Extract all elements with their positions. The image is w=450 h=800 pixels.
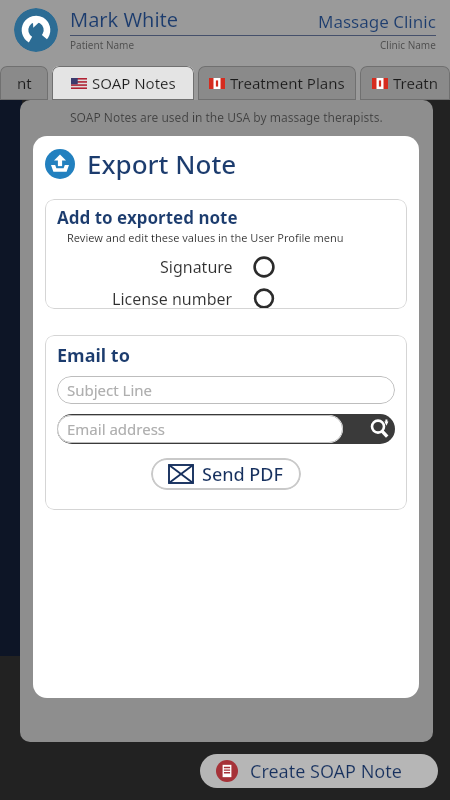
staticText: Signature — [160, 256, 233, 278]
button[interactable]: Search contacts — [365, 414, 395, 444]
button[interactable]: Back — [14, 8, 58, 52]
staticText: Patient Name — [70, 38, 135, 52]
staticText: Create SOAP Note — [250, 759, 402, 784]
staticText: Treatn — [393, 73, 439, 93]
button[interactable]: License number — [57, 288, 395, 309]
staticText: Mark White — [70, 6, 179, 33]
staticText: Send PDF — [202, 462, 283, 487]
staticText: Subject Line — [67, 380, 153, 400]
button[interactable]: nt — [0, 66, 48, 100]
button[interactable]: SOAP Notes — [52, 66, 194, 100]
staticText: Treatment Plans — [230, 73, 345, 93]
staticText: License number — [112, 288, 233, 309]
staticText: Export Note — [87, 146, 237, 181]
button[interactable]: Email address — [57, 415, 343, 443]
button[interactable]: Signature — [57, 254, 395, 280]
staticText: Review and edit these values in the User… — [67, 230, 344, 245]
staticText: Email address — [67, 419, 166, 439]
staticText: SOAP Notes — [92, 73, 176, 93]
button[interactable]: Treatment Plans — [198, 66, 356, 100]
button[interactable]: Send PDF — [151, 458, 301, 490]
staticText: SOAP Notes are used in the USA by massag… — [70, 109, 383, 125]
button[interactable]: Subject Line — [57, 376, 395, 404]
staticText: nt — [17, 73, 32, 93]
button[interactable]: Treatn — [360, 66, 450, 100]
staticText: Add to exported note — [57, 206, 238, 229]
button[interactable]: Create SOAP Note — [200, 754, 438, 788]
staticText: Massage Clinic — [318, 10, 436, 33]
staticText: Email to — [57, 343, 130, 368]
staticText: Clinic Name — [380, 38, 436, 52]
